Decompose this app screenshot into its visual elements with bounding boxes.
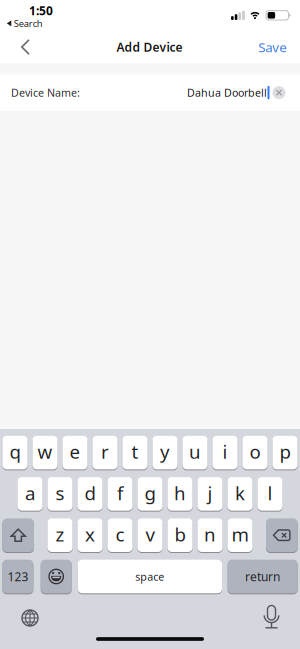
staticText: o [249,439,260,464]
button[interactable]: u [182,436,208,469]
button[interactable]: y [152,436,178,469]
staticText: x [85,522,95,547]
button[interactable]: l [257,477,283,511]
staticText: p [279,439,290,464]
staticText: return [245,568,280,584]
button[interactable]: k [227,477,253,511]
button[interactable]: d [77,477,103,511]
staticText: w [37,439,52,464]
staticText: Dahua Doorbell [187,86,267,100]
button[interactable]: v [137,518,163,552]
button[interactable]: Next keyboard [13,601,47,635]
button[interactable]: space [78,560,222,593]
button[interactable]: t [122,436,148,469]
staticText: r [101,439,109,464]
button[interactable]: z [47,518,73,552]
staticText: s [55,480,64,505]
button[interactable]: w [32,436,58,469]
staticText: 123 [7,568,28,584]
staticText: u [189,439,201,464]
staticText: a [25,480,35,505]
staticText: space [135,569,164,584]
button[interactable]: c [107,518,133,552]
button[interactable]: n [197,518,223,552]
button[interactable]: x [77,518,103,552]
staticText: b [174,522,185,547]
staticText: m [231,522,248,547]
staticText: Search [14,17,43,30]
button[interactable]: b [167,518,193,552]
button[interactable]: g [137,477,163,511]
button[interactable]: p [272,436,298,469]
button[interactable]: e [62,436,88,469]
button[interactable]: h [167,477,193,511]
staticText: Add Device [117,39,183,55]
staticText: q [9,439,20,464]
button[interactable]: return [228,560,298,593]
staticText: f [117,480,123,505]
staticText: v [145,522,154,547]
staticText: e [69,439,80,464]
staticText: l [267,480,272,505]
button[interactable]: q [2,436,28,469]
button[interactable]: Emoji [41,560,72,593]
staticText: z [55,522,64,547]
button[interactable]: Shift [2,518,34,552]
staticText: i [222,439,227,464]
button[interactable]: i [212,436,238,469]
button[interactable]: Clear text [269,86,300,99]
staticText: k [235,480,245,505]
staticText: g [144,480,155,505]
staticText: c [115,522,124,547]
button[interactable]: Delete [266,518,298,552]
staticText: y [160,439,170,464]
staticText: Save [258,38,287,56]
button[interactable]: a [17,477,43,511]
staticText: 1:50 [29,2,53,18]
staticText: h [174,480,186,505]
button[interactable]: Save [258,38,287,56]
button[interactable]: Dictation [255,597,287,636]
button[interactable]: s [47,477,73,511]
button[interactable]: m [227,518,253,552]
staticText: t [131,439,138,464]
staticText: n [204,522,216,547]
button[interactable]: r [92,436,118,469]
button[interactable]: Back [11,29,40,65]
button[interactable]: j [197,477,223,511]
button[interactable]: o [242,436,268,469]
button[interactable]: Numbers [2,560,33,593]
button[interactable]: Back to Search [7,17,43,30]
button[interactable]: Device Name text field [0,86,300,100]
button[interactable]: f [107,477,133,511]
staticText: Device Name: [11,86,80,100]
staticText: d [84,480,95,505]
staticText: j [207,480,212,505]
